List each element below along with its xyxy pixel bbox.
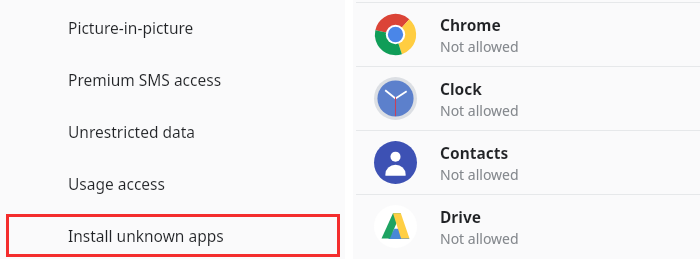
button[interactable]: Premium SMS access — [0, 54, 345, 105]
staticText: Chrome — [440, 14, 501, 35]
button[interactable]: Usage access — [0, 158, 345, 209]
staticText: Clock — [440, 78, 482, 99]
button[interactable]: Unrestricted data — [0, 106, 345, 157]
staticText: Drive — [440, 206, 482, 227]
button[interactable]: Chrome — [353, 3, 700, 66]
staticText: Usage access — [68, 173, 165, 194]
staticText: Not allowed — [440, 101, 519, 120]
button[interactable]: Drive — [353, 195, 700, 258]
staticText: Not allowed — [440, 37, 519, 56]
other: Contacts — [374, 141, 417, 184]
button[interactable]: Contacts — [353, 131, 700, 194]
other: Clock — [374, 77, 417, 120]
other: Drive — [374, 205, 417, 248]
staticText: Install unknown apps — [68, 225, 224, 246]
button[interactable]: Picture-in-picture — [0, 2, 345, 53]
staticText: Not allowed — [440, 165, 519, 184]
staticText: Not allowed — [440, 229, 519, 248]
staticText: Picture-in-picture — [68, 17, 194, 38]
other: Chrome — [374, 13, 417, 56]
staticText: Unrestricted data — [68, 121, 196, 142]
button[interactable]: Install unknown apps — [0, 210, 345, 259]
button[interactable]: Clock — [353, 67, 700, 130]
staticText: Premium SMS access — [68, 69, 222, 90]
staticText: Contacts — [440, 142, 509, 163]
